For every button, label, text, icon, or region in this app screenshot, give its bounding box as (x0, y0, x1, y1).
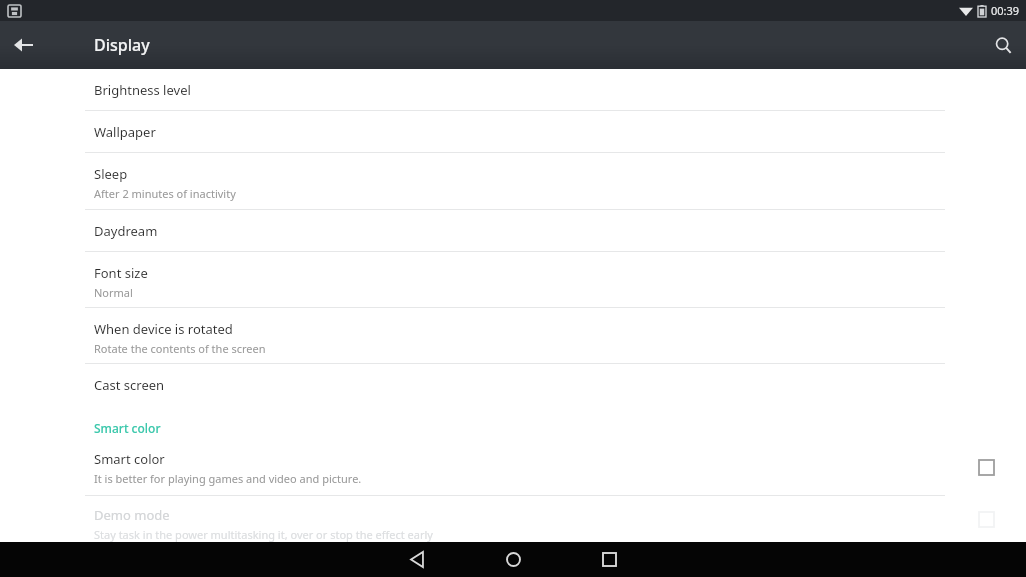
button[interactable]: Daydream (0, 210, 1026, 251)
staticText: Rotate the contents of the screen (94, 341, 266, 356)
button[interactable]: Recent apps (577, 542, 641, 577)
button[interactable]: Smart color checkbox (946, 440, 1026, 495)
staticText: Display (94, 34, 150, 56)
staticText: Stay task in the power multitasking it, … (94, 527, 433, 542)
staticText: When device is rotated (94, 320, 233, 338)
button[interactable]: Smart color (0, 440, 1026, 495)
button[interactable]: Font size (0, 252, 1026, 307)
button[interactable]: Back (385, 542, 449, 577)
button[interactable]: Wallpaper (0, 111, 1026, 152)
staticText: 00:39 (991, 3, 1020, 18)
staticText: Demo mode (94, 506, 170, 524)
button[interactable]: Back (0, 21, 46, 69)
staticText: It is better for playing games and video… (94, 471, 362, 486)
staticText: Smart color (94, 450, 165, 468)
button[interactable]: Brightness level (0, 69, 1026, 110)
button[interactable]: Search (980, 21, 1026, 69)
button[interactable]: When device is rotated (0, 308, 1026, 363)
staticText: Cast screen (94, 376, 165, 394)
button[interactable]: Sleep (0, 153, 1026, 209)
button[interactable]: Cast screen (0, 364, 1026, 405)
staticText: Daydream (94, 222, 158, 240)
staticText: Smart color (94, 420, 161, 436)
staticText: Brightness level (94, 81, 191, 99)
button[interactable]: Demo mode (0, 496, 1026, 542)
staticText: After 2 minutes of inactivity (94, 186, 236, 201)
staticText: Sleep (94, 165, 128, 183)
staticText: Normal (94, 285, 133, 300)
button[interactable]: Home (481, 542, 545, 577)
staticText: Wallpaper (94, 123, 156, 141)
staticText: Font size (94, 264, 148, 282)
